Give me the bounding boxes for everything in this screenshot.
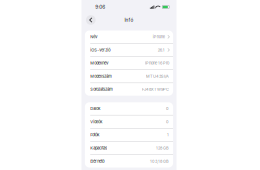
button[interactable]: Név (85, 30, 173, 43)
staticText: iPhone 16 Pro (145, 61, 169, 65)
button[interactable]: Fotók (85, 129, 173, 141)
button[interactable]: Elérhető (85, 155, 173, 167)
staticText: Elérhető (90, 159, 104, 164)
button[interactable]: Kapacitás (85, 142, 173, 154)
button[interactable]: Videók (85, 115, 173, 128)
button[interactable]: Dalok (85, 102, 173, 115)
staticText: Modellnév (90, 61, 108, 65)
staticText: 103,18 GB (150, 159, 169, 164)
staticText: iOS-verzió (90, 47, 110, 52)
staticText: Fotók (90, 132, 99, 137)
staticText: 0 (166, 119, 169, 124)
staticText: 128 GB (156, 146, 169, 150)
staticText: MTU43SI/A (146, 74, 169, 79)
button[interactable]: Sorozatszám (85, 83, 173, 96)
staticText: iPhone (153, 34, 165, 39)
staticText: Modellszám (90, 74, 112, 79)
button[interactable]: Back (85, 14, 96, 25)
staticText: Név (90, 34, 97, 39)
staticText: 0 (166, 106, 169, 111)
staticText: Sorozatszám (90, 87, 113, 92)
staticText: 1 (167, 132, 169, 137)
staticText: Kapacitás (90, 146, 107, 150)
button[interactable]: Modellnév (85, 57, 173, 69)
staticText: Videók (90, 119, 102, 124)
staticText: FJ48XTW9PC (142, 87, 169, 92)
button[interactable]: iOS-verzió (85, 44, 173, 56)
staticText: Dalok (90, 106, 100, 111)
staticText: 26.1 (158, 47, 165, 52)
staticText: Infó (124, 17, 133, 23)
staticText: 9:06 (95, 4, 105, 10)
button[interactable]: Modellszám (85, 70, 173, 82)
